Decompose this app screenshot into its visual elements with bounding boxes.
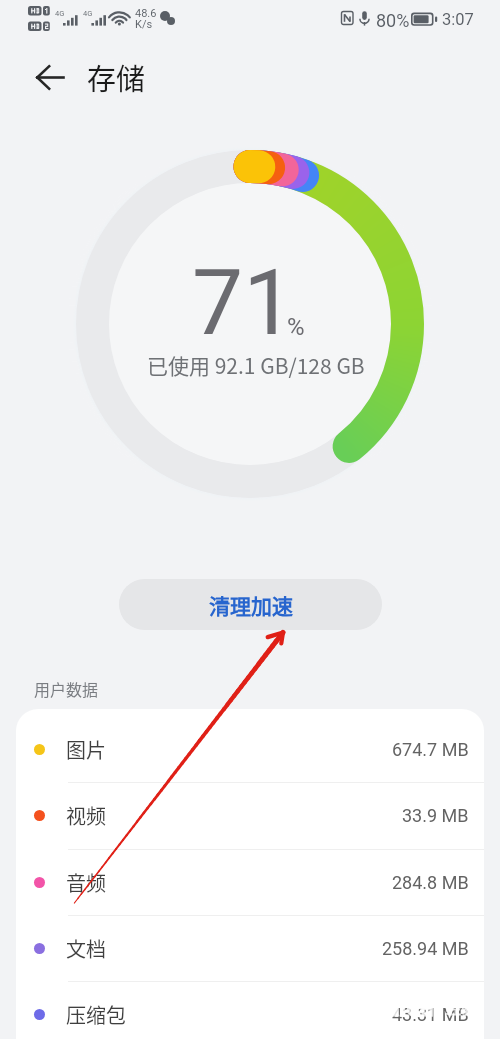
staticText: 经验 (446, 997, 477, 1019)
button[interactable]: 清理加速 (119, 579, 382, 630)
staticText: 3:07 (442, 10, 474, 29)
button[interactable]: 视频 (16, 782, 484, 848)
button[interactable]: 压缩包 (16, 981, 484, 1039)
staticText: 674.7 MB (392, 739, 469, 760)
button[interactable]: 图片 (16, 716, 484, 782)
staticText: 用户数据 (34, 677, 99, 700)
button[interactable]: 音频 (16, 849, 484, 915)
staticText: 4G (83, 9, 93, 18)
staticText: 80% (376, 10, 410, 31)
staticText: 图片 (66, 735, 106, 764)
staticText: 压缩包 (66, 1000, 126, 1029)
staticText: 33.9 MB (402, 805, 469, 826)
staticText: 音频 (66, 868, 106, 897)
staticText: 文档 (66, 934, 106, 963)
staticText: K/s (135, 18, 153, 31)
staticText: 已使用 92.1 GB/128 GB (147, 350, 365, 380)
staticText: 43.31 MB (392, 1004, 469, 1025)
staticText: 48.6 (135, 7, 157, 20)
staticText: 清理加速 (209, 590, 293, 620)
staticText: 4G (55, 9, 65, 18)
staticText: Baidu (371, 993, 435, 1022)
button[interactable]: Back (23, 50, 77, 104)
staticText: 284.8 MB (392, 872, 469, 893)
staticText: 258.94 MB (382, 938, 469, 959)
button[interactable]: 文档 (16, 915, 484, 981)
staticText: 71 (192, 250, 295, 357)
staticText: 存储 (87, 56, 146, 98)
staticText: 视频 (66, 801, 106, 830)
staticText: % (287, 313, 305, 341)
